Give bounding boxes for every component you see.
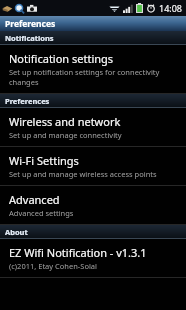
staticText: Set up and manage connectivity (9, 130, 122, 140)
staticText: Preferences (5, 96, 50, 106)
staticText: (c)2011, Etay Cohen-Solal (9, 261, 98, 271)
button[interactable]: Wireless and network (0, 108, 186, 147)
staticText: Wireless and network (9, 114, 121, 129)
staticText: EZ Wifi Notification - v1.3.1 (9, 245, 147, 260)
staticText: Wi-Fi Settings (9, 153, 79, 168)
staticText: 14:08 (159, 2, 183, 14)
button[interactable]: Notification settings (0, 45, 186, 94)
button[interactable]: EZ Wifi Notification - v1.3.1 (0, 239, 186, 278)
button[interactable]: Advanced (0, 186, 186, 225)
staticText: Set up notification settings for connect… (9, 67, 180, 87)
staticText: Advanced (9, 192, 60, 207)
staticText: Preferences (5, 18, 56, 30)
staticText: Advanced settings (9, 208, 74, 218)
button[interactable]: Wi-Fi Settings (0, 147, 186, 186)
staticText: Notification settings (9, 51, 114, 66)
staticText: Set up and manage wireless access points (9, 169, 157, 179)
staticText: Notifications (5, 33, 54, 43)
staticText: About (5, 227, 28, 237)
